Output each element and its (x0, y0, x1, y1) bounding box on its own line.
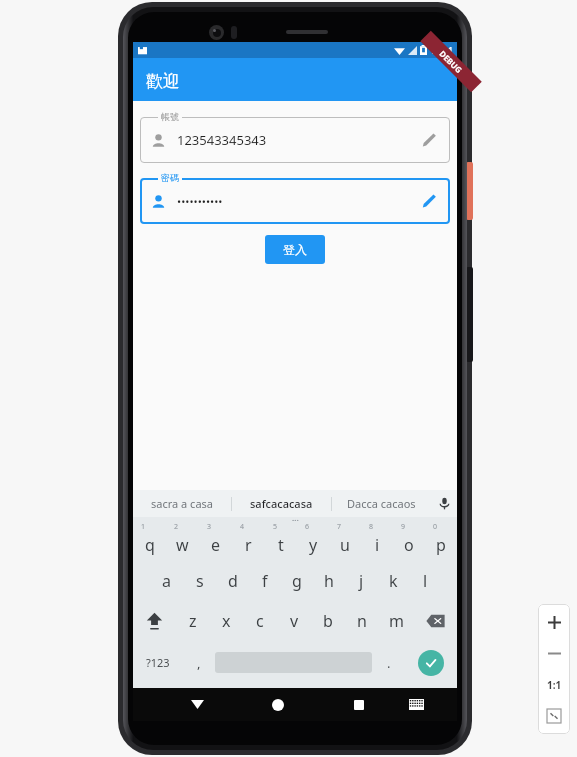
button[interactable]: 5 (265, 521, 297, 561)
button[interactable]: ?123 (133, 641, 182, 684)
staticText: l (423, 570, 428, 592)
button[interactable]: g (281, 561, 313, 601)
button[interactable]: Zoom in (541, 609, 567, 635)
staticText: c (256, 610, 264, 632)
button[interactable]: 登入 (265, 235, 325, 264)
button[interactable]: d (216, 561, 249, 601)
button[interactable]: j (345, 561, 377, 601)
button[interactable]: v (277, 601, 311, 641)
staticText: 登入 (283, 242, 307, 257)
button[interactable]: a (150, 561, 183, 601)
button[interactable]: 3 (199, 521, 232, 561)
staticText: h (324, 570, 334, 592)
staticText: d (228, 570, 238, 592)
staticText: 4 (240, 522, 245, 532)
button[interactable]: 7 (329, 521, 361, 561)
staticText: 6 (305, 522, 310, 532)
staticText: 1 (141, 522, 146, 532)
staticText: 密碼 (161, 172, 179, 183)
staticText: q (145, 534, 155, 556)
staticText: i (375, 534, 380, 556)
staticText: 0 (433, 522, 438, 532)
button[interactable]: s (183, 561, 216, 601)
staticText: s (196, 570, 204, 592)
staticText: DEBUG (437, 48, 465, 75)
button[interactable]: 4 (232, 521, 265, 561)
button[interactable]: Fit to screen (541, 703, 567, 729)
staticText: x (222, 610, 231, 632)
button[interactable]: 123543345343 (140, 111, 450, 163)
staticText: u (340, 534, 350, 556)
button[interactable]: z (176, 601, 209, 641)
button[interactable]: 8 (361, 521, 393, 561)
button[interactable]: Enter (418, 650, 444, 676)
staticText: j (359, 570, 364, 592)
staticText: p (436, 534, 446, 556)
button[interactable]: 1 (133, 521, 166, 561)
button[interactable]: Recents (318, 688, 399, 721)
button[interactable]: k (377, 561, 409, 601)
staticText: o (404, 534, 414, 556)
staticText: e (211, 534, 221, 556)
button[interactable]: Voice input (431, 490, 457, 517)
staticText: ••• (292, 517, 299, 521)
button[interactable]: Dacca cacaos (332, 490, 431, 517)
button[interactable]: Edit (419, 191, 439, 211)
staticText: k (389, 570, 398, 592)
button[interactable]: safcacacasa (232, 490, 331, 517)
button[interactable]: n (345, 601, 379, 641)
button[interactable]: Zoom out (541, 640, 567, 666)
button[interactable]: f (249, 561, 281, 601)
button[interactable]: sacra a casa (133, 490, 231, 517)
staticText: . (387, 654, 391, 672)
button[interactable]: Backspace (413, 601, 457, 641)
button[interactable]: , (182, 641, 215, 684)
staticText: 8 (369, 522, 374, 532)
staticText: b (323, 610, 333, 632)
staticText: g (292, 570, 302, 592)
staticText: y (309, 534, 318, 556)
button[interactable]: m (379, 601, 413, 641)
button[interactable]: Switch keyboard (399, 688, 433, 721)
staticText: a (162, 570, 171, 592)
button[interactable]: c (243, 601, 277, 641)
staticText: 123543345343 (177, 131, 419, 149)
staticText: r (245, 534, 252, 556)
staticText: 11:21 (430, 44, 454, 56)
button[interactable]: b (311, 601, 345, 641)
staticText: ?123 (146, 655, 170, 670)
staticText: n (357, 610, 367, 632)
button[interactable]: l (409, 561, 441, 601)
staticText: v (290, 610, 299, 632)
button[interactable]: Shift (133, 601, 176, 641)
button[interactable]: 9 (393, 521, 425, 561)
staticText: 9 (401, 522, 406, 532)
staticText: 帳號 (161, 111, 179, 122)
staticText: f (262, 570, 268, 592)
staticText: , (197, 654, 201, 672)
staticText: 7 (337, 522, 342, 532)
staticText: z (189, 610, 197, 632)
button[interactable]: Edit (419, 130, 439, 150)
staticText: 1:1 (547, 678, 562, 692)
button[interactable]: 2 (166, 521, 199, 561)
staticText: sacra a casa (151, 496, 213, 511)
staticText: m (389, 610, 404, 632)
staticText: Dacca cacaos (347, 496, 416, 511)
button[interactable]: 0 (425, 521, 457, 561)
staticText: w (176, 534, 189, 556)
staticText: t (278, 534, 284, 556)
staticText: safcacacasa (250, 496, 313, 511)
button[interactable]: x (209, 601, 243, 641)
button[interactable]: h (313, 561, 345, 601)
button[interactable]: Actual size (541, 672, 567, 698)
button[interactable]: Hide keyboard (157, 688, 237, 721)
button[interactable]: . (372, 641, 405, 684)
button[interactable]: Home (237, 688, 318, 721)
staticText: 2 (174, 522, 179, 532)
button[interactable]: 6 (297, 521, 329, 561)
button[interactable]: ••••••••••• (140, 172, 450, 224)
staticText: 歡迎 (146, 71, 180, 92)
staticText: ••••••••••• (177, 194, 419, 209)
